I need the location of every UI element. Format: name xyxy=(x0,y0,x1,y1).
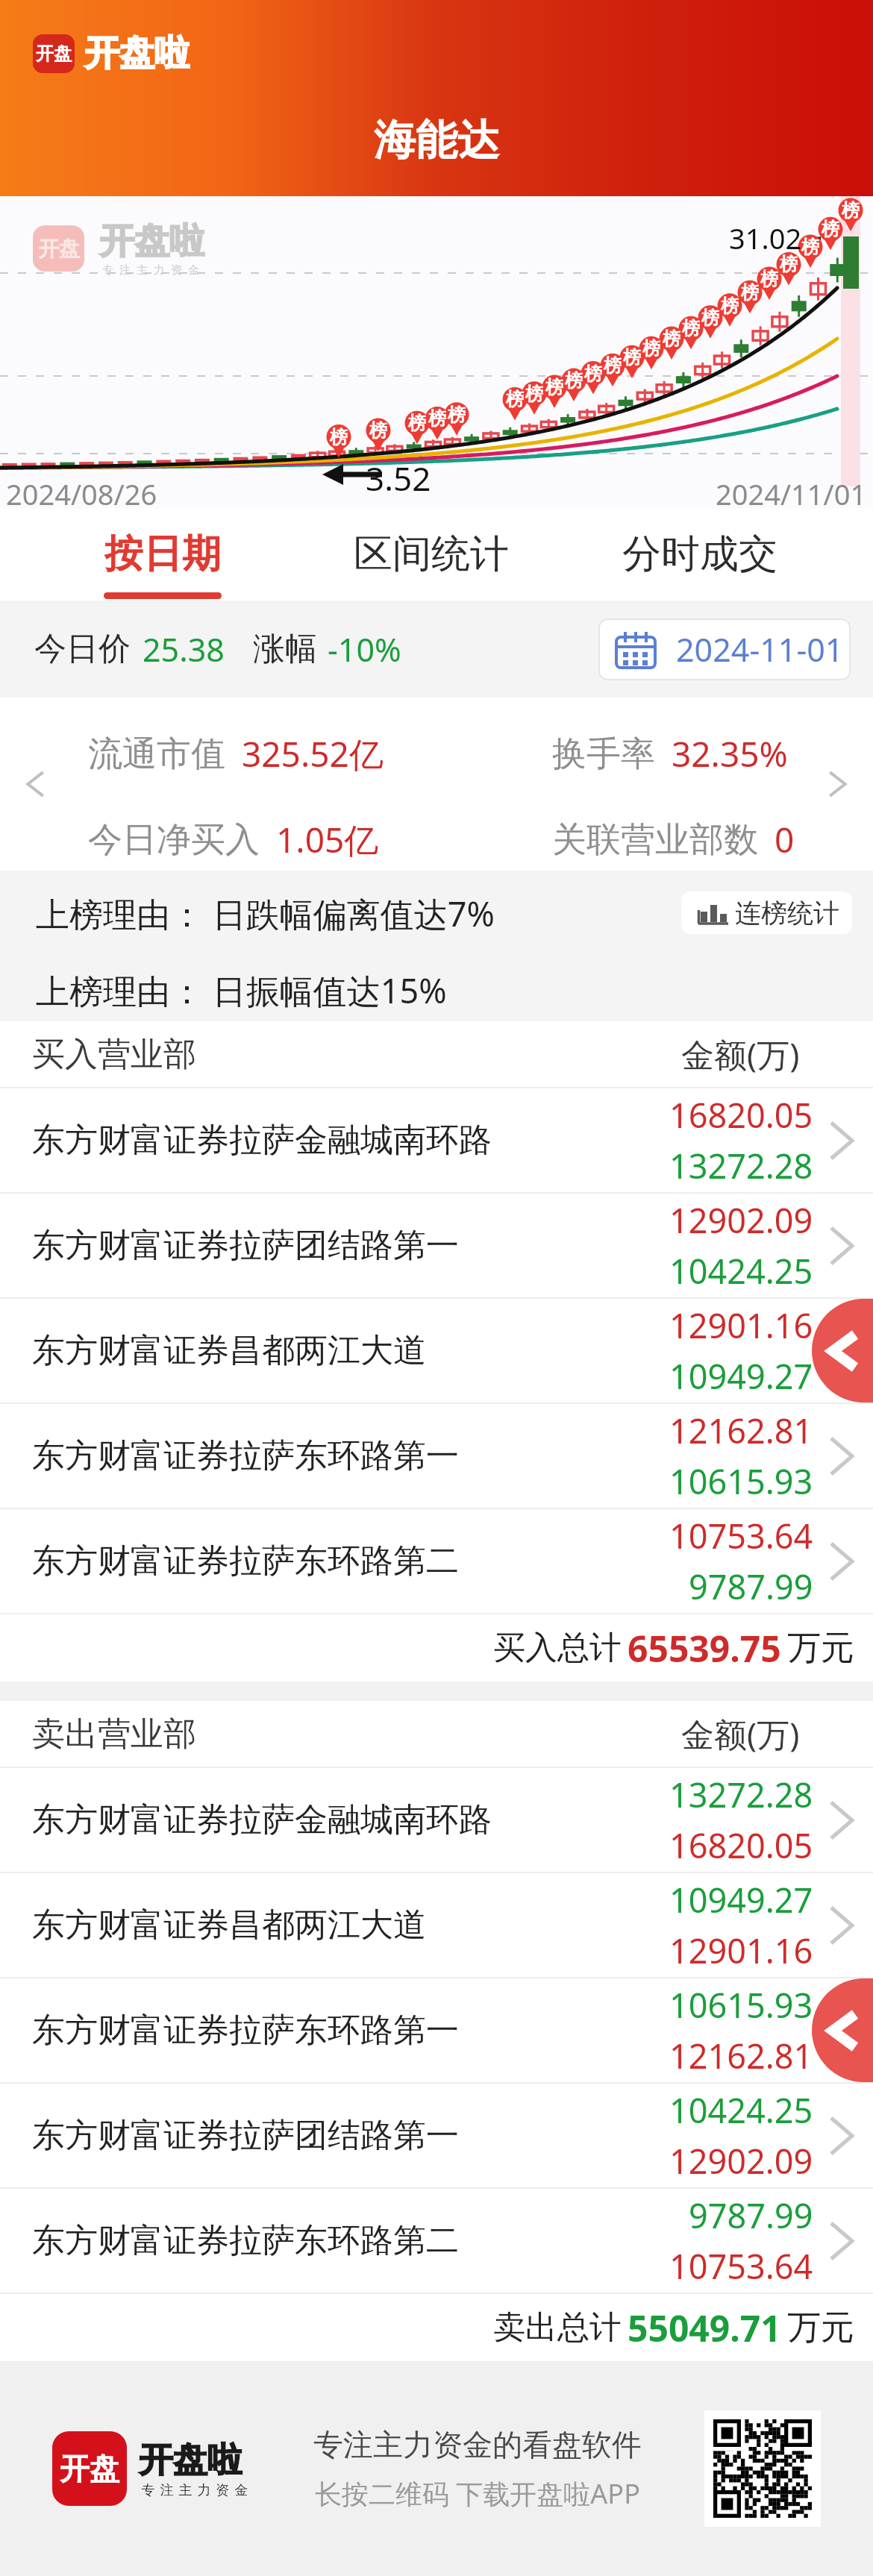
staticText: 2024-11-01 xyxy=(676,627,844,671)
staticText: 65539.75 xyxy=(628,1624,781,1673)
staticText: 分时成交 xyxy=(622,530,777,579)
button[interactable]: 东方财富证券拉萨东环路第一 xyxy=(0,1978,873,2082)
staticText: 榜 xyxy=(663,328,680,350)
staticText: 2024/11/01 xyxy=(716,474,867,509)
staticText: 10753.64 xyxy=(669,1513,813,1558)
staticText: 东方财富证券拉萨东环路第一 xyxy=(32,2010,459,2051)
staticText: 按日期 xyxy=(104,530,221,579)
staticText: 榜 xyxy=(604,354,622,377)
staticText: -10% xyxy=(328,627,401,671)
staticText: 12901.16 xyxy=(669,1928,813,1973)
staticText: 12902.09 xyxy=(669,1197,813,1243)
staticText: 买入总计 xyxy=(493,1628,622,1668)
staticText: 榜 xyxy=(584,363,602,385)
staticText: 开盘 xyxy=(38,236,80,262)
staticText: 金额(万) xyxy=(681,1032,800,1077)
staticText: 13272.28 xyxy=(669,1772,813,1817)
staticText: 榜 xyxy=(369,419,387,442)
staticText: 榜 xyxy=(822,218,839,240)
staticText: 东方财富证券拉萨金融城南环路 xyxy=(32,1120,492,1161)
staticText: 16820.05 xyxy=(669,1092,813,1138)
staticText: 上榜理由： 日振幅值达15% xyxy=(36,968,447,1013)
staticText: 榜 xyxy=(525,383,543,405)
staticText: 榜 xyxy=(780,253,798,275)
staticText: 榜 xyxy=(760,268,778,290)
staticText: 开盘 xyxy=(60,2450,119,2487)
button[interactable]: 东方财富证券拉萨团结路第一 xyxy=(0,1194,873,1297)
staticText: 流通市值 xyxy=(88,733,225,776)
staticText: 10424.25 xyxy=(669,2087,813,2133)
staticText: 榜 xyxy=(506,388,524,410)
staticText: 榜 xyxy=(701,307,719,329)
staticText: 专注主力资金的看盘软件 xyxy=(313,2426,642,2463)
button[interactable]: 东方财富证券拉萨金融城南环路 xyxy=(0,1768,873,1872)
staticText: 榜 xyxy=(448,404,466,426)
staticText: 东方财富证券拉萨东环路第二 xyxy=(32,2220,459,2261)
staticText: 榜 xyxy=(565,369,583,392)
staticText: 榜 xyxy=(642,337,660,360)
button[interactable]: 东方财富证券拉萨团结路第一 xyxy=(0,2084,873,2187)
button[interactable]: 连榜统计 xyxy=(681,891,852,934)
staticText: 16820.05 xyxy=(669,1823,813,1868)
staticText: 万元 xyxy=(787,1627,854,1670)
staticText: 上榜理由： 日跌幅偏离值达7% xyxy=(36,891,495,936)
staticText: 10615.93 xyxy=(669,1982,813,2028)
staticText: 换手率 xyxy=(552,733,655,776)
staticText: 12901.16 xyxy=(669,1303,813,1348)
staticText: 2024/08/26 xyxy=(6,474,157,509)
staticText: 今日净买入 xyxy=(88,818,260,862)
staticText: 榜 xyxy=(428,407,446,430)
staticText: 东方财富证券拉萨金融城南环路 xyxy=(32,1799,492,1840)
staticText: 海能达 xyxy=(374,114,499,167)
button[interactable]: Previous page xyxy=(812,1299,873,1403)
button[interactable]: 东方财富证券拉萨金融城南环路 xyxy=(0,1088,873,1192)
button[interactable]: 按日期 xyxy=(28,509,297,601)
staticText: 榜 xyxy=(721,295,739,317)
staticText: 开盘 xyxy=(36,43,72,65)
staticText: 325.52亿 xyxy=(242,730,384,777)
button[interactable]: 分时成交 xyxy=(566,509,834,601)
button[interactable]: 2024-11-01 xyxy=(598,618,851,680)
staticText: 9787.99 xyxy=(689,1564,813,1609)
staticText: 13272.28 xyxy=(669,1143,813,1188)
staticText: 关联营业部数 xyxy=(552,818,758,862)
button[interactable]: 东方财富证券昌都两江大道 xyxy=(0,1299,873,1403)
staticText: 榜 xyxy=(330,426,348,448)
staticText: 32.35% xyxy=(672,730,788,777)
staticText: 榜 xyxy=(842,199,860,222)
staticText: 连榜统计 xyxy=(735,897,839,930)
staticText: 东方财富证券拉萨团结路第一 xyxy=(32,1225,459,1266)
staticText: 3.52 xyxy=(366,456,431,501)
button[interactable]: 东方财富证券昌都两江大道 xyxy=(0,1873,873,1977)
staticText: 开盘啦 xyxy=(99,219,204,263)
staticText: 9787.99 xyxy=(689,2193,813,2238)
staticText: 东方财富证券拉萨东环路第一 xyxy=(32,1435,459,1476)
staticText: 东方财富证券昌都两江大道 xyxy=(32,1330,426,1371)
button[interactable]: 东方财富证券拉萨东环路第一 xyxy=(0,1404,873,1508)
staticText: 12902.09 xyxy=(669,2138,813,2184)
staticText: 卖出总计 xyxy=(493,2307,622,2348)
button[interactable]: 东方财富证券拉萨东环路第二 xyxy=(0,2189,873,2293)
button[interactable]: Previous page xyxy=(812,1978,873,2082)
staticText: 东方财富证券拉萨团结路第一 xyxy=(32,2115,459,2156)
staticText: 10753.64 xyxy=(669,2243,813,2289)
staticText: 榜 xyxy=(741,281,759,304)
staticText: 开盘啦 xyxy=(84,31,190,75)
staticText: 东方财富证券昌都两江大道 xyxy=(32,1905,426,1946)
staticText: 1.05亿 xyxy=(276,816,379,863)
button[interactable]: 东方财富证券拉萨东环路第二 xyxy=(0,1509,873,1613)
staticText: 涨幅 xyxy=(253,629,317,669)
staticText: 55049.71 xyxy=(628,2304,781,2352)
staticText: 12162.81 xyxy=(669,2033,813,2078)
staticText: 专注主力资金 xyxy=(139,2482,251,2499)
staticText: 31.02 xyxy=(729,219,802,257)
staticText: 12162.81 xyxy=(669,1408,813,1453)
staticText: 榜 xyxy=(682,317,700,339)
button[interactable]: 区间统计 xyxy=(297,509,566,601)
staticText: 榜 xyxy=(623,346,641,369)
staticText: 长按二维码 下载开盘啦APP xyxy=(315,2475,640,2512)
staticText: 开盘啦 xyxy=(139,2439,242,2482)
staticText: 区间统计 xyxy=(354,530,509,579)
staticText: 今日价 xyxy=(34,629,131,669)
staticText: 10949.27 xyxy=(669,1877,813,1922)
